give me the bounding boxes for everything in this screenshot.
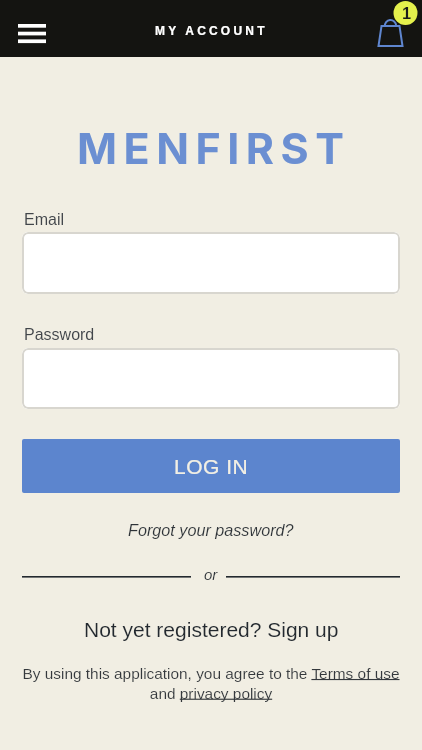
staticText: or xyxy=(204,566,218,583)
button[interactable]: Forgot your password? xyxy=(0,516,422,544)
staticText: Email xyxy=(24,211,65,229)
button[interactable]: 1 xyxy=(370,0,422,57)
staticText: Password xyxy=(24,326,95,344)
button[interactable] xyxy=(22,232,400,294)
staticText: MY ACCOUNT xyxy=(155,24,268,37)
staticText: 1 xyxy=(402,4,412,22)
button[interactable]: By using this application, you agree to … xyxy=(0,665,422,702)
button[interactable]: Not yet registered? Sign up xyxy=(0,614,422,644)
button[interactable] xyxy=(22,348,400,409)
staticText: Forgot your password? xyxy=(128,521,294,539)
staticText: MENFIRST xyxy=(77,122,351,172)
staticText: By using this application, you agree to … xyxy=(22,665,400,702)
button[interactable] xyxy=(12,16,52,50)
staticText: Not yet registered? Sign up xyxy=(84,618,339,641)
button[interactable]: LOG IN xyxy=(22,439,400,493)
staticText: LOG IN xyxy=(174,455,249,478)
